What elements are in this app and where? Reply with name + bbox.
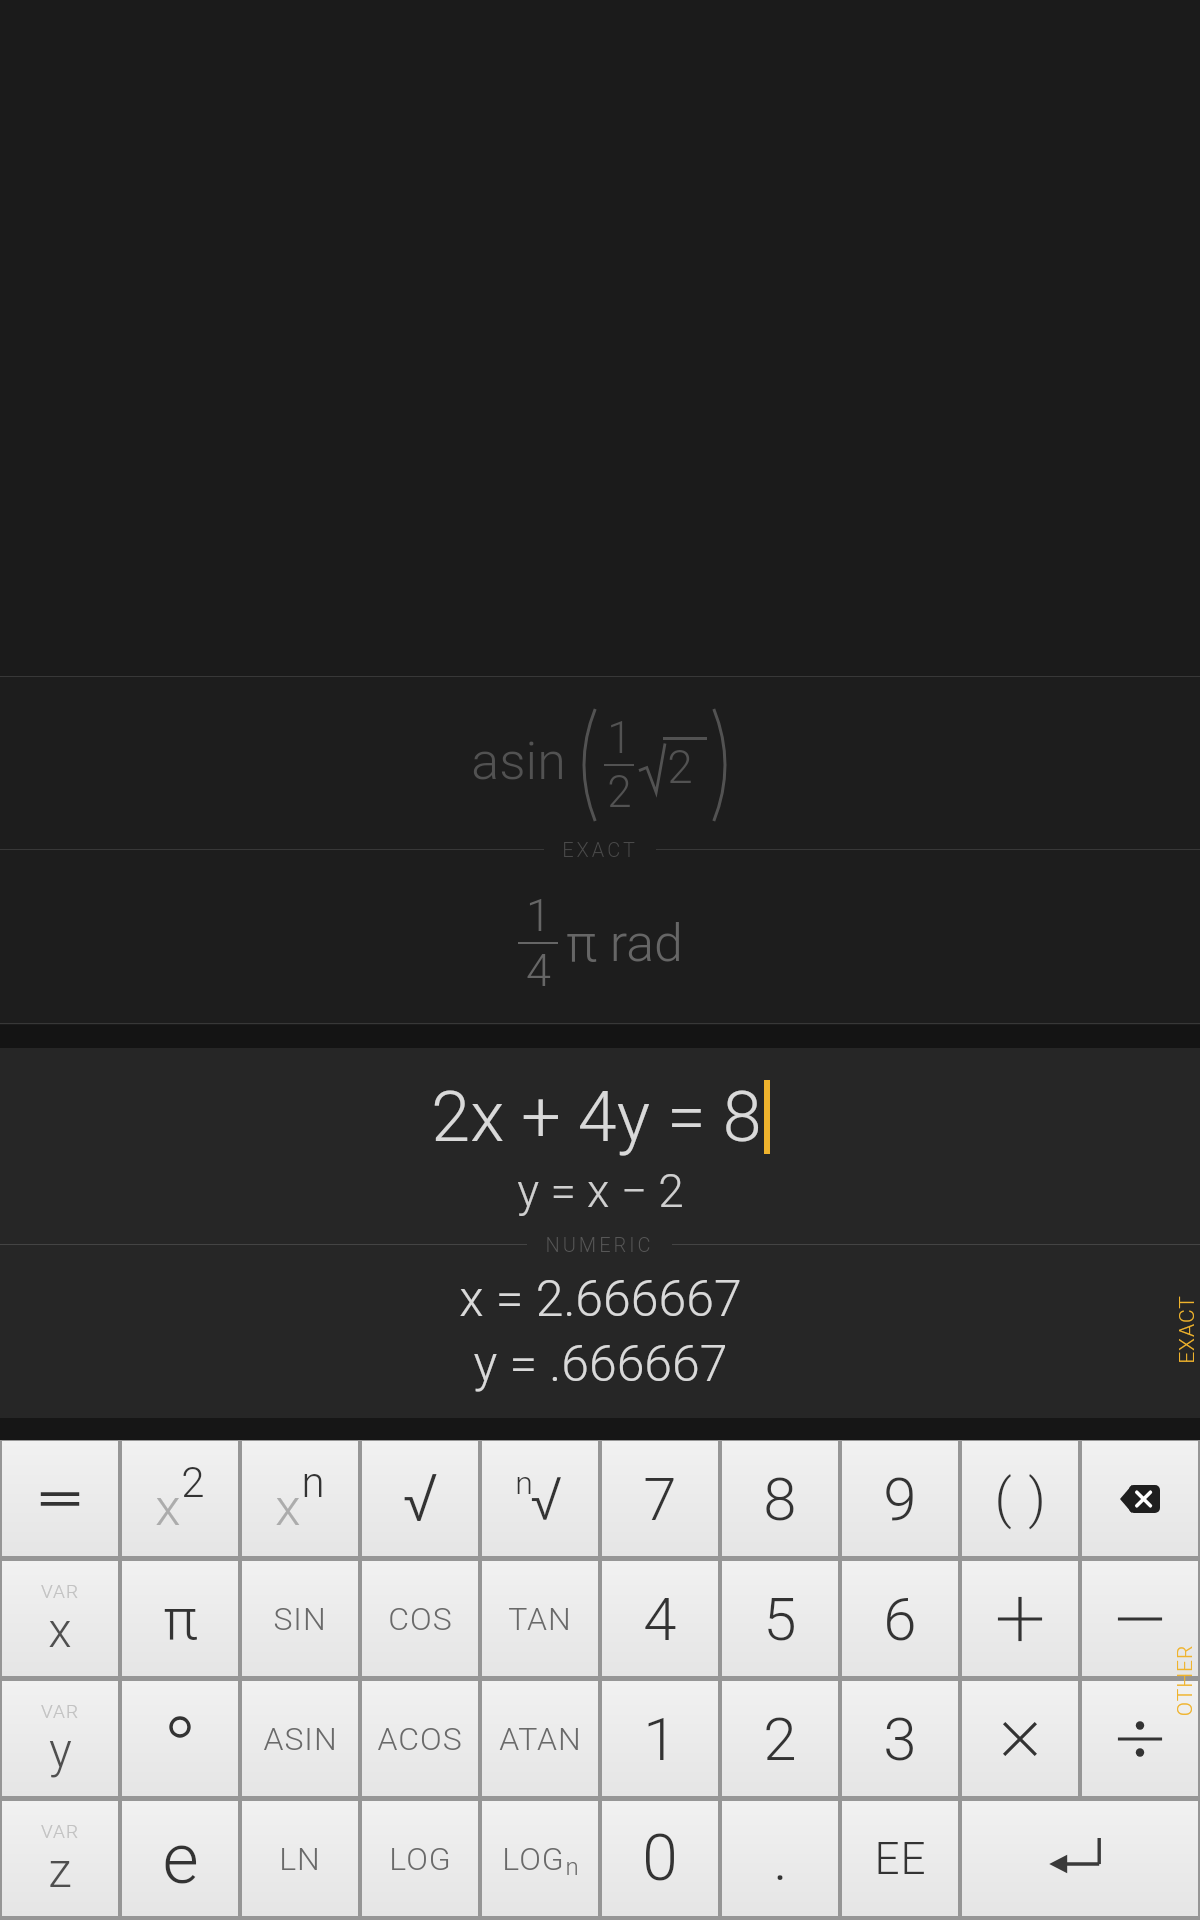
- staticText: √: [530, 1464, 563, 1534]
- staticText: n: [565, 1853, 579, 1881]
- staticText: 9: [883, 1464, 917, 1534]
- button[interactable]: (: [962, 1441, 1078, 1556]
- staticText: SIN: [273, 1600, 327, 1638]
- staticText: y = .666667: [473, 1335, 728, 1394]
- button[interactable]: [1082, 1561, 1198, 1676]
- button[interactable]: 1: [602, 1681, 718, 1796]
- staticText: 2: [763, 1704, 797, 1774]
- button[interactable]: x: [242, 1441, 358, 1556]
- staticText: 4: [643, 1584, 677, 1654]
- staticText: z: [48, 1842, 72, 1898]
- button[interactable]: [962, 1681, 1078, 1796]
- staticText: 7: [643, 1464, 677, 1534]
- button[interactable]: e: [122, 1801, 238, 1916]
- staticText: 2: [181, 1458, 205, 1507]
- button[interactable]: .: [722, 1801, 838, 1916]
- button[interactable]: 8: [722, 1441, 838, 1556]
- staticText: VAR: [41, 1580, 79, 1602]
- button[interactable]: ASIN: [242, 1681, 358, 1796]
- staticText: EE: [874, 1833, 927, 1885]
- button[interactable]: COS: [362, 1561, 478, 1676]
- button[interactable]: VAR: [2, 1801, 118, 1916]
- button[interactable]: x: [122, 1441, 238, 1556]
- button[interactable]: 0: [602, 1801, 718, 1916]
- staticText: π: [163, 1585, 198, 1653]
- staticText: LN: [279, 1840, 321, 1878]
- button[interactable]: [962, 1801, 1198, 1916]
- staticText: x = 2.666667: [459, 1270, 742, 1329]
- button[interactable]: 7: [602, 1441, 718, 1556]
- button[interactable]: 6: [842, 1561, 958, 1676]
- staticText: LOG: [389, 1840, 452, 1878]
- staticText: 2: [607, 766, 632, 818]
- button[interactable]: π: [122, 1561, 238, 1676]
- staticText: 2x + 4y = 8: [431, 1076, 762, 1158]
- staticText: VAR: [41, 1700, 79, 1722]
- staticText: 4: [526, 944, 551, 997]
- button[interactable]: OTHER: [1146, 1641, 1200, 1719]
- staticText: 1: [643, 1704, 677, 1774]
- button[interactable]: 3: [842, 1681, 958, 1796]
- button[interactable]: LN: [242, 1801, 358, 1916]
- staticText: 6: [883, 1584, 917, 1654]
- staticText: .: [773, 1824, 788, 1894]
- staticText: ASIN: [263, 1720, 338, 1758]
- staticText: OTHER: [1172, 1644, 1197, 1716]
- staticText: VAR: [41, 1820, 79, 1842]
- button[interactable]: ATAN: [482, 1681, 598, 1796]
- staticText: asin: [471, 731, 566, 792]
- staticText: 2: [667, 740, 693, 794]
- staticText: 3: [883, 1704, 917, 1774]
- button[interactable]: LOG: [362, 1801, 478, 1916]
- button[interactable]: asin: [0, 676, 1200, 1024]
- staticText: x: [48, 1602, 72, 1658]
- button[interactable]: n: [482, 1441, 598, 1556]
- staticText: NUMERIC: [545, 1233, 654, 1256]
- button[interactable]: [962, 1561, 1078, 1676]
- staticText: 5: [763, 1584, 797, 1654]
- button[interactable]: 4: [602, 1561, 718, 1676]
- button[interactable]: LOG: [482, 1801, 598, 1916]
- button[interactable]: TAN: [482, 1561, 598, 1676]
- button[interactable]: 5: [722, 1561, 838, 1676]
- staticText: 1: [607, 712, 632, 764]
- button[interactable]: 2x + 4y = 8: [0, 1048, 1200, 1418]
- staticText: x: [275, 1477, 301, 1538]
- button[interactable]: [1082, 1441, 1198, 1556]
- button[interactable]: SIN: [242, 1561, 358, 1676]
- button[interactable]: 2: [722, 1681, 838, 1796]
- staticText: COS: [388, 1600, 453, 1638]
- staticText: ACOS: [377, 1720, 463, 1758]
- staticText: 0: [642, 1821, 678, 1896]
- button[interactable]: √: [362, 1441, 478, 1556]
- staticText: n: [515, 1464, 533, 1502]
- staticText: e: [162, 1818, 199, 1900]
- staticText: π rad: [566, 913, 683, 974]
- staticText: TAN: [508, 1600, 572, 1638]
- button[interactable]: EE: [842, 1801, 958, 1916]
- staticText: ATAN: [499, 1720, 582, 1758]
- staticText: y = x − 2: [517, 1164, 684, 1218]
- staticText: y: [49, 1722, 72, 1778]
- staticText: 1: [526, 889, 551, 942]
- staticText: n: [301, 1458, 325, 1507]
- staticText: EXACT: [562, 838, 638, 861]
- staticText: 8: [763, 1464, 797, 1534]
- button[interactable]: [1082, 1681, 1198, 1796]
- staticText: EXACT: [1175, 1295, 1200, 1364]
- button[interactable]: [122, 1681, 238, 1796]
- staticText: √: [402, 1460, 439, 1537]
- staticText: (: [994, 1467, 1012, 1530]
- staticText: LOG: [502, 1840, 565, 1878]
- button[interactable]: [2, 1441, 118, 1556]
- button[interactable]: VAR: [2, 1561, 118, 1676]
- button[interactable]: ACOS: [362, 1681, 478, 1796]
- button[interactable]: EXACT: [1148, 1290, 1200, 1368]
- staticText: x: [155, 1477, 181, 1538]
- button[interactable]: VAR: [2, 1681, 118, 1796]
- button[interactable]: 9: [842, 1441, 958, 1556]
- staticText: ): [1028, 1467, 1046, 1530]
